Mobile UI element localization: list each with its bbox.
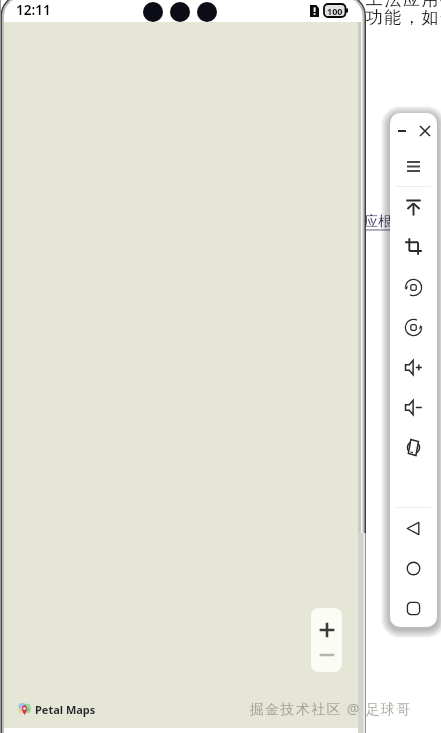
button[interactable]: Crop [390,226,437,266]
button[interactable]: Rotate right [390,307,437,347]
button[interactable]: Rotate left [390,267,437,307]
button[interactable]: Rotate screen [390,427,437,467]
button[interactable]: Zoom out [311,644,342,672]
button[interactable]: Volume up [390,347,437,387]
staticText: 功能，如分 [366,7,441,28]
button[interactable]: Back [390,508,437,548]
staticText: 应根 [364,213,392,231]
button[interactable]: Menu [390,146,437,186]
button[interactable]: Volume down [390,387,437,427]
button[interactable]: Close [413,113,437,149]
button[interactable]: Recents [390,588,437,627]
staticText: 100 [327,5,343,17]
button[interactable]: Upload [390,187,437,227]
staticText: 掘金技术社区 @ 足球哥 [250,699,412,718]
button[interactable]: Zoom in [311,608,342,644]
button[interactable]: Minimize [390,113,413,149]
staticText: Petal Maps [35,702,96,717]
button[interactable]: Home [390,548,437,588]
staticText: 12:11 [16,1,51,19]
button[interactable]: Petal Maps [18,702,96,717]
staticText: 工法应用提 [366,0,441,10]
